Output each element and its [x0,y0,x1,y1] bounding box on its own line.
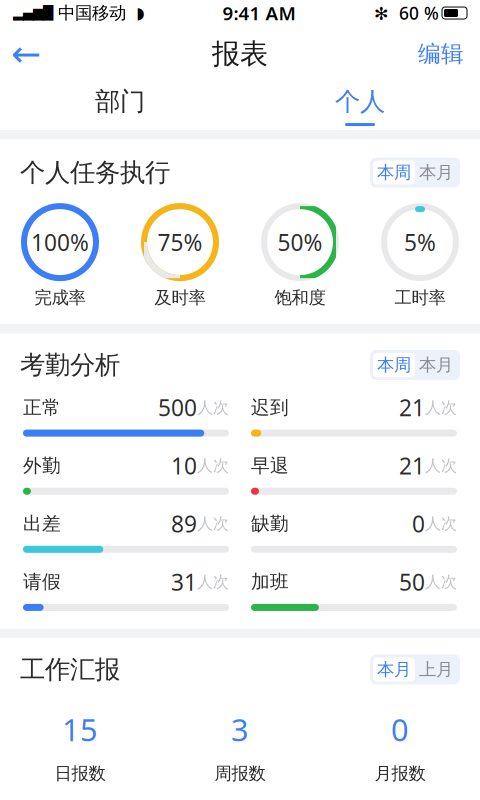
staticText: 人次 [425,398,457,417]
staticText: 10 [171,451,197,481]
staticText: 请假 [23,570,61,593]
staticText: 50 [399,567,425,597]
staticText: 本月 [419,354,453,376]
staticText: 9:41 AM [222,1,295,25]
staticText: 31 [171,567,197,597]
staticText: 本周 [377,162,411,183]
staticText: ✻ 60 % [374,1,439,24]
staticText: ← [11,34,41,74]
staticText: 15 [62,709,98,750]
button[interactable]: 本月 [415,353,457,377]
staticText: 人次 [197,398,229,417]
staticText: 人次 [425,514,457,534]
button[interactable]: 返回 [0,30,52,78]
staticText: 外勤 [23,454,61,477]
staticText: 5% [404,227,436,257]
staticText: 21 [399,451,425,481]
staticText: 缺勤 [251,512,289,535]
staticText: 75% [157,227,202,257]
staticText: 89 [171,509,197,539]
staticText: 加班 [251,570,289,593]
button[interactable]: 本月 [415,161,457,185]
staticText: 工时率 [394,287,445,308]
staticText: 报表 [212,37,268,71]
button[interactable]: 部门 [0,82,240,130]
staticText: 本月 [419,162,453,183]
button[interactable]: 上月 [415,657,457,681]
staticText: 上月 [419,659,453,680]
staticText: 编辑 [418,40,464,68]
button[interactable]: 本月 [373,657,415,681]
button[interactable]: 本周 [373,353,415,377]
staticText: 周报数 [214,763,265,784]
staticText: 人次 [197,456,229,475]
staticText: 工作汇报 [20,654,120,685]
staticText: 饱和度 [274,287,325,308]
staticText: 21 [399,392,425,423]
staticText: 人次 [197,572,229,592]
staticText: 0 [412,509,425,539]
staticText: 本月 [377,659,411,680]
staticText: 正常 [23,396,61,419]
staticText: 人次 [425,456,457,475]
button[interactable]: 本周 [373,161,415,185]
staticText: 50% [277,227,322,257]
staticText: 0 [391,709,409,750]
staticText: 完成率 [34,287,85,308]
staticText: 考勤分析 [20,349,120,380]
staticText: 迟到 [251,396,289,419]
staticText: 月报数 [374,763,425,784]
button[interactable]: 编辑 [402,30,480,78]
staticText: 3 [231,709,249,750]
staticText: 人次 [425,572,457,592]
staticText: ◗ [136,4,144,22]
staticText: 个人 [335,86,385,117]
button[interactable]: 个人 [240,82,480,130]
staticText: 500 [158,392,197,423]
staticText: 及时率 [154,287,205,308]
staticText: 个人任务执行 [20,157,170,188]
staticText: 早退 [251,454,289,477]
staticText: 中国移动 [53,2,136,24]
staticText: 出差 [23,512,61,535]
staticText: ▂▄▆█ [13,5,53,20]
staticText: 部门 [95,86,145,117]
staticText: 本周 [377,354,411,376]
staticText: 日报数 [54,763,105,784]
staticText: 人次 [197,514,229,534]
staticText: 100% [31,227,89,257]
